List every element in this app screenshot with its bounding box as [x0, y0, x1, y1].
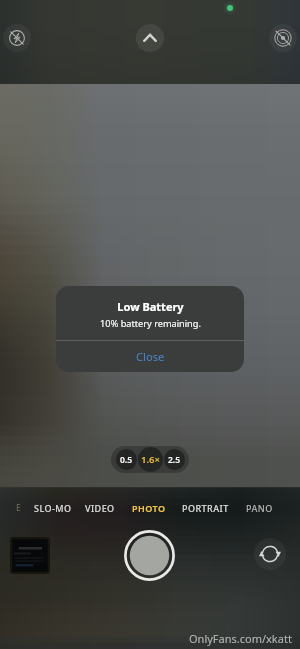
- button[interactable]: Photo library: [10, 537, 50, 574]
- staticText: OnlyFans.com/xkatt: [189, 631, 292, 646]
- staticText: E: [16, 502, 22, 514]
- button[interactable]: Show camera options: [136, 24, 164, 52]
- staticText: 1.6×: [141, 453, 160, 466]
- staticText: 0.5: [120, 454, 133, 466]
- staticText: 10% battery remaining.: [100, 317, 201, 330]
- staticText: PHOTO: [132, 502, 166, 514]
- button[interactable]: 1.6×: [138, 447, 163, 472]
- button[interactable]: Close: [56, 341, 244, 372]
- staticText: PORTRAIT: [182, 502, 229, 514]
- button[interactable]: SLO-MO: [34, 499, 72, 516]
- button[interactable]: E: [16, 499, 22, 516]
- button[interactable]: PHOTO: [132, 499, 166, 516]
- button[interactable]: 2.5: [164, 449, 185, 470]
- staticText: Close: [136, 349, 165, 364]
- button[interactable]: PANO: [246, 499, 273, 516]
- staticText: SLO-MO: [34, 502, 72, 514]
- button[interactable]: VIDEO: [85, 499, 115, 516]
- staticText: VIDEO: [85, 502, 115, 514]
- button[interactable]: PORTRAIT: [182, 499, 229, 516]
- button[interactable]: Live Photo off: [269, 24, 297, 52]
- button[interactable]: Flash off: [3, 24, 31, 52]
- staticText: 2.5: [168, 454, 181, 466]
- button[interactable]: Switch camera: [254, 538, 286, 570]
- button[interactable]: Take photo: [124, 530, 175, 581]
- staticText: Low Battery: [117, 299, 184, 314]
- button[interactable]: 0.5: [116, 449, 137, 470]
- staticText: PANO: [246, 502, 273, 514]
